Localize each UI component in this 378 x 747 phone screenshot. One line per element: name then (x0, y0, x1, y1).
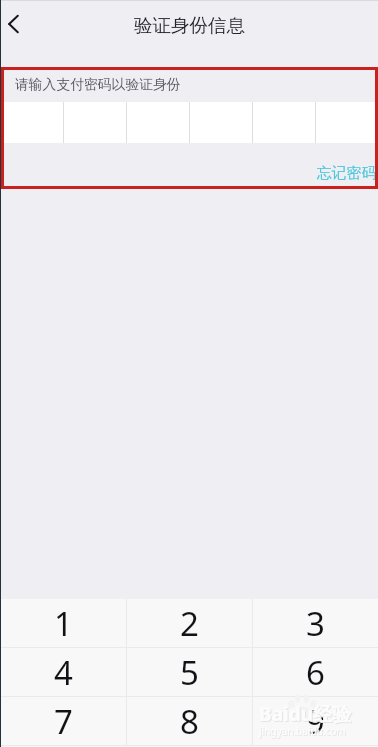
button[interactable]: 1 (0, 599, 126, 647)
staticText: Baidu经验 (260, 702, 353, 728)
button[interactable]: 5 (127, 648, 252, 696)
staticText: jingyan.baidu.com (259, 724, 346, 738)
staticText: 4 (54, 650, 73, 695)
staticText: jingyan.baidu.com (260, 725, 347, 739)
button[interactable]: 7 (0, 697, 126, 745)
button[interactable]: 8 (127, 697, 252, 745)
staticText: 请输入支付密码以验证身份 (15, 76, 181, 93)
staticText: 6 (306, 650, 325, 695)
button[interactable]: 6 (253, 648, 378, 696)
staticText: 5 (180, 650, 199, 695)
button[interactable]: 2 (127, 599, 252, 647)
button[interactable]: 4 (0, 648, 126, 696)
staticText: 3 (306, 601, 325, 646)
button[interactable]: 忘记密码 (317, 164, 378, 189)
button[interactable]: Back (0, 0, 40, 47)
button[interactable]: 9 (253, 697, 378, 745)
button[interactable]: 3 (253, 599, 378, 647)
button[interactable]: Password digit (0, 102, 63, 143)
staticText: 验证身份信息 (134, 14, 245, 37)
staticText: Baidu经验 (259, 701, 352, 727)
staticText: 2 (180, 601, 199, 646)
staticText: 7 (54, 699, 73, 744)
button[interactable]: Password digit (316, 102, 378, 143)
staticText: 9 (306, 699, 325, 744)
staticText: 1 (54, 601, 73, 646)
staticText: 8 (180, 699, 199, 744)
